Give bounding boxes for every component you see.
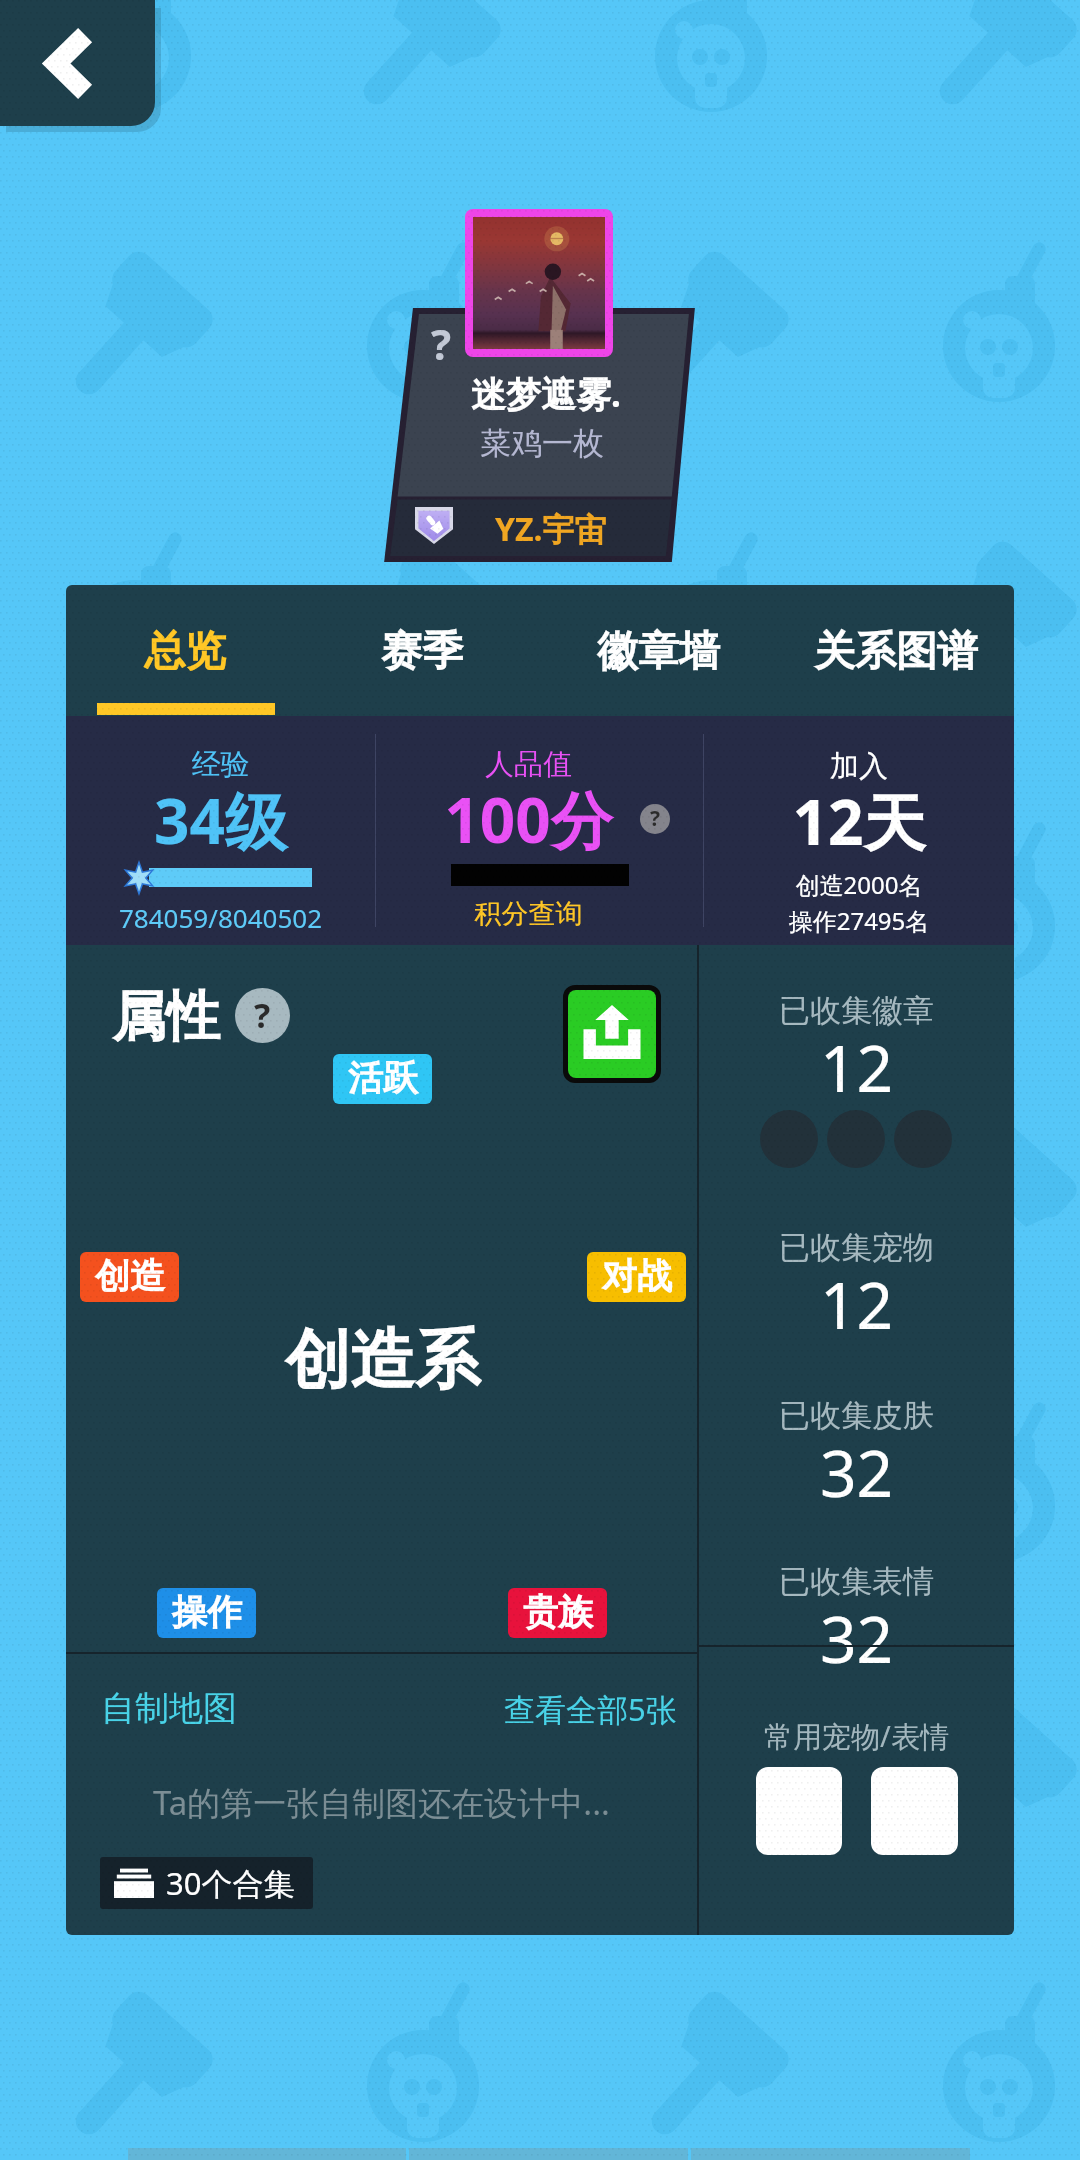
button[interactable]: 30个合集 (100, 1857, 313, 1909)
button[interactable]: Back (0, 0, 155, 126)
staticText: 对战 (602, 1254, 672, 1298)
button[interactable]: ? (431, 315, 452, 372)
button[interactable]: 活跃 (333, 1054, 432, 1104)
staticText: 迷梦遮雾. (386, 370, 706, 418)
button[interactable]: 自制地图 (101, 1687, 237, 1730)
staticText: Ta的第一张自制图还在设计中... (66, 1780, 697, 1825)
button[interactable]: Badge (760, 1110, 818, 1168)
button[interactable]: 贵族 (508, 1588, 607, 1638)
staticText: 30个合集 (166, 1862, 295, 1904)
staticText: ? (254, 992, 271, 1038)
button[interactable]: Help (235, 988, 290, 1043)
button[interactable]: Avatar (473, 217, 605, 349)
button[interactable]: Badge (894, 1110, 952, 1168)
staticText: 徽章墙 (597, 626, 720, 678)
button[interactable]: Share (568, 990, 656, 1078)
button[interactable]: 关系图谱 (777, 585, 1014, 716)
button[interactable]: 赛季 (303, 585, 540, 716)
staticText: 总览 (144, 626, 226, 678)
staticText: 12天 (704, 779, 1014, 864)
staticText: 创造2000名 (704, 868, 1014, 901)
button[interactable]: Emoji (871, 1767, 958, 1855)
staticText: 操作 (172, 1590, 242, 1634)
button[interactable]: 操作 (157, 1588, 256, 1638)
staticText: 加入 (704, 748, 1014, 785)
staticText: 赛季 (381, 626, 463, 678)
staticText: 人品值 (365, 746, 692, 783)
staticText: 已收集徽章 (779, 991, 934, 1030)
button[interactable]: 对战 (587, 1252, 686, 1302)
staticText: 784059/8040502 (66, 900, 375, 935)
staticText: 12 (820, 1261, 894, 1348)
staticText: 经验 (66, 746, 375, 783)
staticText: 活跃 (348, 1056, 418, 1100)
button[interactable]: Help (640, 804, 670, 834)
staticText: 创造系 (285, 1319, 480, 1401)
staticText: 创造 (95, 1254, 165, 1298)
staticText: 已收集皮肤 (779, 1396, 934, 1435)
button[interactable]: 总览 (66, 585, 303, 716)
staticText: 菜鸡一枚 (382, 424, 702, 463)
button[interactable]: 查看全部5张 (504, 1688, 677, 1730)
button[interactable]: Badge (827, 1110, 885, 1168)
staticText: 已收集宠物 (779, 1228, 934, 1267)
button[interactable]: Pet (756, 1767, 842, 1855)
staticText: 32 (820, 1429, 894, 1516)
staticText: 100分 (365, 777, 692, 862)
staticText: 32 (820, 1595, 894, 1682)
staticText: 12 (820, 1024, 894, 1111)
staticText: 常用宠物/表情 (699, 1716, 1014, 1756)
staticText: 贵族 (523, 1590, 593, 1634)
staticText: 操作27495名 (704, 904, 1014, 937)
staticText: 已收集表情 (779, 1562, 934, 1601)
staticText: 关系图谱 (814, 626, 978, 678)
button[interactable]: YZ.宇宙 (495, 507, 607, 551)
staticText: 34级 (66, 778, 375, 863)
button[interactable]: 积分查询 (365, 897, 692, 931)
button[interactable]: 创造 (80, 1252, 179, 1302)
staticText: 属性 (112, 983, 220, 1051)
button[interactable]: 徽章墙 (540, 585, 777, 716)
staticText: ? (650, 804, 661, 833)
